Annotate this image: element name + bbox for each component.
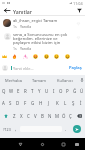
staticText: Ç [69,113,72,119]
button[interactable]: İ [77,97,85,109]
button[interactable]: C [25,109,32,122]
button[interactable]: Ö [60,109,67,122]
staticText: A [2,100,5,106]
button[interactable]: G [29,97,37,109]
staticText: F [24,100,27,106]
staticText: 1s [13,46,17,51]
button[interactable]: Ü [78,85,85,97]
button[interactable]: L [61,97,69,109]
button[interactable]: Recents [57,138,69,150]
button[interactable]: Emoji [52,52,61,60]
button[interactable]: A [0,97,7,109]
staticText: Z [13,113,16,119]
button[interactable]: X [18,109,25,122]
staticText: Yanıtla [20,46,32,51]
staticText: 1s [13,24,17,29]
button[interactable]: Ş [69,97,77,109]
button[interactable]: Hide keyboard [71,138,83,150]
staticText: G [31,100,35,106]
button[interactable]: Y [36,85,43,97]
button[interactable]: U [43,85,50,97]
staticText: İ [80,100,82,106]
staticText: B [41,113,44,119]
staticText: W [9,88,14,94]
button[interactable]: Z [11,109,18,122]
button[interactable]: . [63,122,69,136]
button[interactable]: Backspace [74,109,85,122]
staticText: Tamam [32,78,46,83]
button[interactable]: F [21,97,29,109]
button[interactable]: Tamam [26,75,52,85]
staticText: E [17,88,20,94]
button[interactable]: Home [36,138,48,150]
staticText: Ü [80,88,84,94]
button[interactable]: I [50,85,57,97]
staticText: sena_a Sonuncusunu en çok beğendim. elle… [13,32,73,45]
button[interactable]: Back [1,6,12,15]
button[interactable]: S [7,97,14,109]
staticText: X [20,113,23,119]
button[interactable]: M [53,109,60,122]
staticText: Kullanıcı [57,78,73,83]
button[interactable]: Emoji [21,52,30,60]
staticText: K [56,100,59,106]
staticText: V [34,113,37,119]
button[interactable]: E [15,85,22,97]
staticText: H [39,100,43,106]
button[interactable]: W [8,85,15,97]
staticText: Paylaş [69,65,82,71]
button[interactable]: Emoji [10,52,19,60]
button[interactable]: Q [0,85,8,97]
staticText: Ö [62,113,66,119]
staticText: Y [38,88,41,94]
staticText: R [24,88,27,94]
button[interactable]: Emoji [42,52,51,60]
staticText: Yanıt ekle... [13,66,34,71]
staticText: Q [2,88,6,94]
button[interactable]: Filter [74,6,84,15]
staticText: Yanıtla [20,24,32,29]
staticText: T [31,88,34,94]
button[interactable]: Merhaba [0,75,26,85]
button[interactable]: Back [14,138,26,150]
button[interactable]: Ç [67,109,74,122]
button[interactable]: Emoji [0,52,9,60]
button[interactable]: H [37,97,45,109]
staticText: D [16,100,20,106]
button[interactable]: O [57,85,64,97]
staticText: 11:04 [73,1,83,6]
staticText: Yanıtlar [13,8,32,15]
button[interactable]: B [39,109,46,122]
button[interactable]: Ğ [71,85,78,97]
staticText: Ş [72,100,75,106]
button[interactable]: Shift [0,109,11,122]
button[interactable]: T [29,85,36,97]
staticText: J [48,100,50,106]
button[interactable]: D [14,97,21,109]
staticText: Ğ [73,88,77,94]
button[interactable]: Emoji [31,52,40,60]
staticText: M [55,113,59,119]
staticText: S [9,100,12,106]
staticText: N [48,113,52,119]
button[interactable]: J [45,97,53,109]
button[interactable]: R [22,85,29,97]
button[interactable]: N [46,109,53,122]
button[interactable]: V [32,109,39,122]
button[interactable]: Paylaş [68,63,83,73]
staticText: . [65,126,67,132]
button[interactable]: P [64,85,71,97]
button[interactable]: Kullanıcı [52,75,78,85]
staticText: , [15,126,17,132]
button[interactable]: , [13,122,19,136]
staticText: ali_ihsan_ergici Tamam bizde [13,18,65,24]
button[interactable]: Emoji [63,52,72,60]
button[interactable]: K [53,97,61,109]
button[interactable]: Voice input [78,75,85,85]
button[interactable]: Send [69,122,85,136]
button[interactable]: ?123 [0,122,13,136]
staticText: ?123 [3,127,11,132]
